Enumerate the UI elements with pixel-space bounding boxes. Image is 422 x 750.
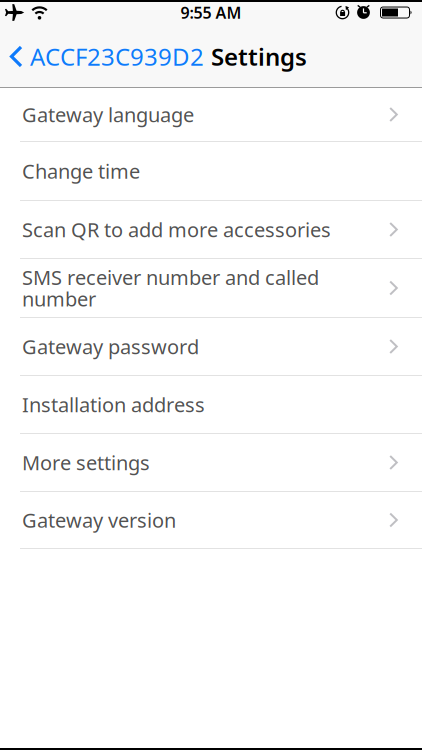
staticText: Scan QR to add more accessories bbox=[22, 216, 331, 243]
button[interactable]: Gateway password bbox=[0, 318, 422, 375]
staticText: 9:55 AM bbox=[180, 2, 241, 23]
button[interactable]: ACCF23C939D2 bbox=[10, 41, 204, 72]
staticText: Gateway language bbox=[22, 101, 194, 128]
button[interactable]: More settings bbox=[0, 434, 422, 491]
button[interactable]: Gateway language bbox=[0, 88, 422, 141]
button[interactable]: Scan QR to add more accessories bbox=[0, 201, 422, 258]
staticText: Gateway version bbox=[22, 507, 176, 533]
staticText: ACCF23C939D2 bbox=[30, 41, 204, 72]
staticText: More settings bbox=[22, 449, 150, 476]
button[interactable]: Gateway version bbox=[0, 492, 422, 548]
staticText: Installation address bbox=[22, 391, 205, 418]
button[interactable]: Installation address bbox=[0, 376, 422, 433]
button[interactable]: Change time bbox=[0, 142, 422, 200]
staticText: Settings bbox=[211, 41, 307, 72]
staticText: SMS receiver number and called number bbox=[22, 264, 319, 312]
button[interactable]: SMS receiver number and called number bbox=[0, 259, 422, 317]
staticText: Change time bbox=[22, 158, 140, 184]
staticText: Gateway password bbox=[22, 333, 199, 360]
